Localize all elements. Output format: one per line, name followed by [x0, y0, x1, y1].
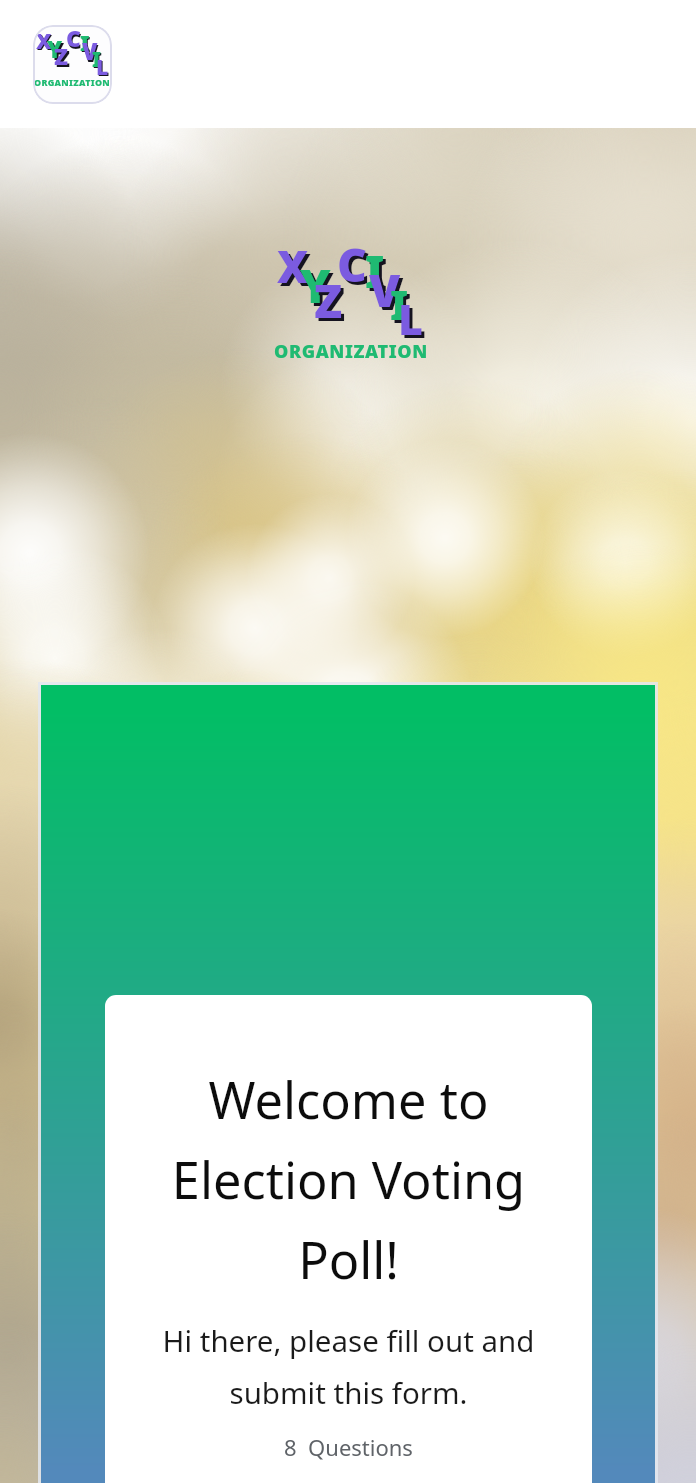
staticText: L [97, 53, 110, 82]
staticText: V [372, 262, 404, 323]
staticText: X [36, 26, 52, 55]
staticText: I [365, 241, 385, 301]
staticText: ORGANIZATION [34, 76, 111, 88]
staticText: Welcome to Election Voting Poll! [105, 1065, 592, 1294]
staticText: C [337, 233, 367, 296]
staticText: V [83, 38, 99, 68]
staticText: I [80, 28, 90, 58]
staticText: Z [54, 41, 68, 72]
staticText: Y [300, 254, 331, 317]
staticText: I [93, 46, 103, 74]
button[interactable]: XYZ Civil Organization logo [33, 25, 112, 104]
staticText: Hi there, please fill out and submit thi… [105, 1320, 592, 1412]
staticText: I [393, 279, 412, 336]
staticText: L [96, 52, 109, 81]
staticText: 8 Questions [105, 1432, 592, 1462]
staticText: Y [303, 257, 334, 320]
staticText: C [66, 25, 81, 54]
staticText: X [280, 240, 312, 299]
staticText: V [82, 36, 98, 66]
staticText: X [37, 27, 53, 56]
staticText: Y [47, 34, 63, 65]
staticText: V [369, 259, 401, 320]
staticText: ORGANIZATION [274, 339, 428, 364]
staticText: I [390, 276, 409, 333]
staticText: Z [56, 43, 70, 74]
staticText: X [277, 237, 309, 296]
staticText: L [398, 289, 424, 348]
staticText: L [401, 292, 427, 351]
staticText: Z [314, 269, 343, 332]
staticText: Z [317, 272, 346, 335]
staticText: C [340, 236, 370, 299]
staticText: I [368, 244, 388, 304]
staticText: C [67, 25, 82, 56]
staticText: Y [49, 36, 65, 67]
staticText: I [92, 45, 102, 73]
staticText: I [81, 29, 91, 59]
